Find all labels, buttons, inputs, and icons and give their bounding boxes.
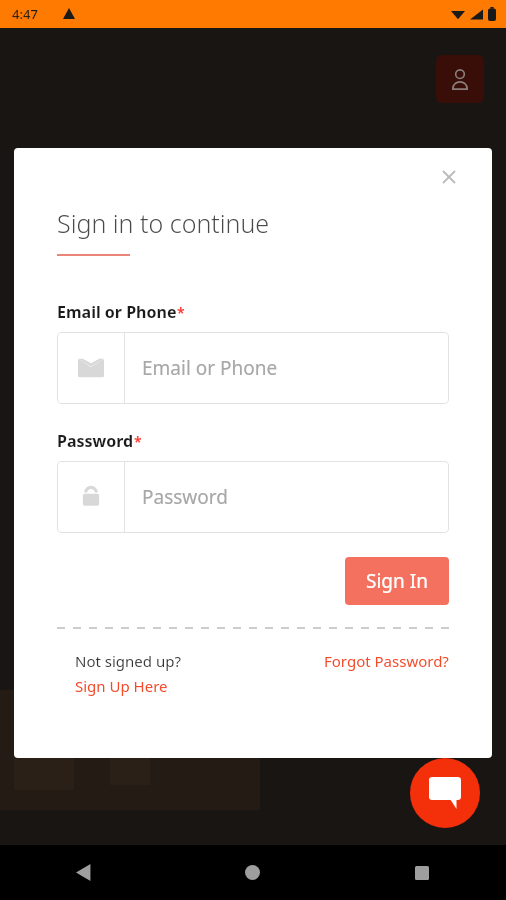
staticText: 4:47	[12, 5, 38, 23]
staticText: *	[134, 432, 142, 451]
staticText: *	[177, 303, 185, 322]
button[interactable]: Email or Phone	[57, 332, 449, 404]
button[interactable]: Home	[168, 845, 337, 900]
button[interactable]: Password	[57, 461, 449, 533]
staticText: Password	[57, 430, 134, 452]
staticText: Email or Phone	[57, 301, 177, 323]
button[interactable]: Sign In	[345, 557, 449, 605]
staticText: Password	[142, 484, 228, 510]
button[interactable]: Close	[434, 162, 464, 192]
staticText: Not signed up?	[75, 651, 181, 671]
button[interactable]: Recents	[337, 845, 506, 900]
button[interactable]: Profile	[436, 55, 484, 103]
staticText: Sign in to continue	[57, 206, 270, 240]
button[interactable]: Chat	[410, 758, 480, 828]
staticText: Email or Phone	[142, 355, 278, 381]
staticText: Sign Up Here	[75, 676, 168, 696]
button[interactable]: Back	[0, 845, 168, 900]
button[interactable]: Forgot Password?	[324, 651, 449, 671]
staticText: Sign In	[366, 568, 428, 594]
staticText: Forgot Password?	[324, 651, 449, 671]
button[interactable]: Not signed up?	[75, 651, 324, 696]
